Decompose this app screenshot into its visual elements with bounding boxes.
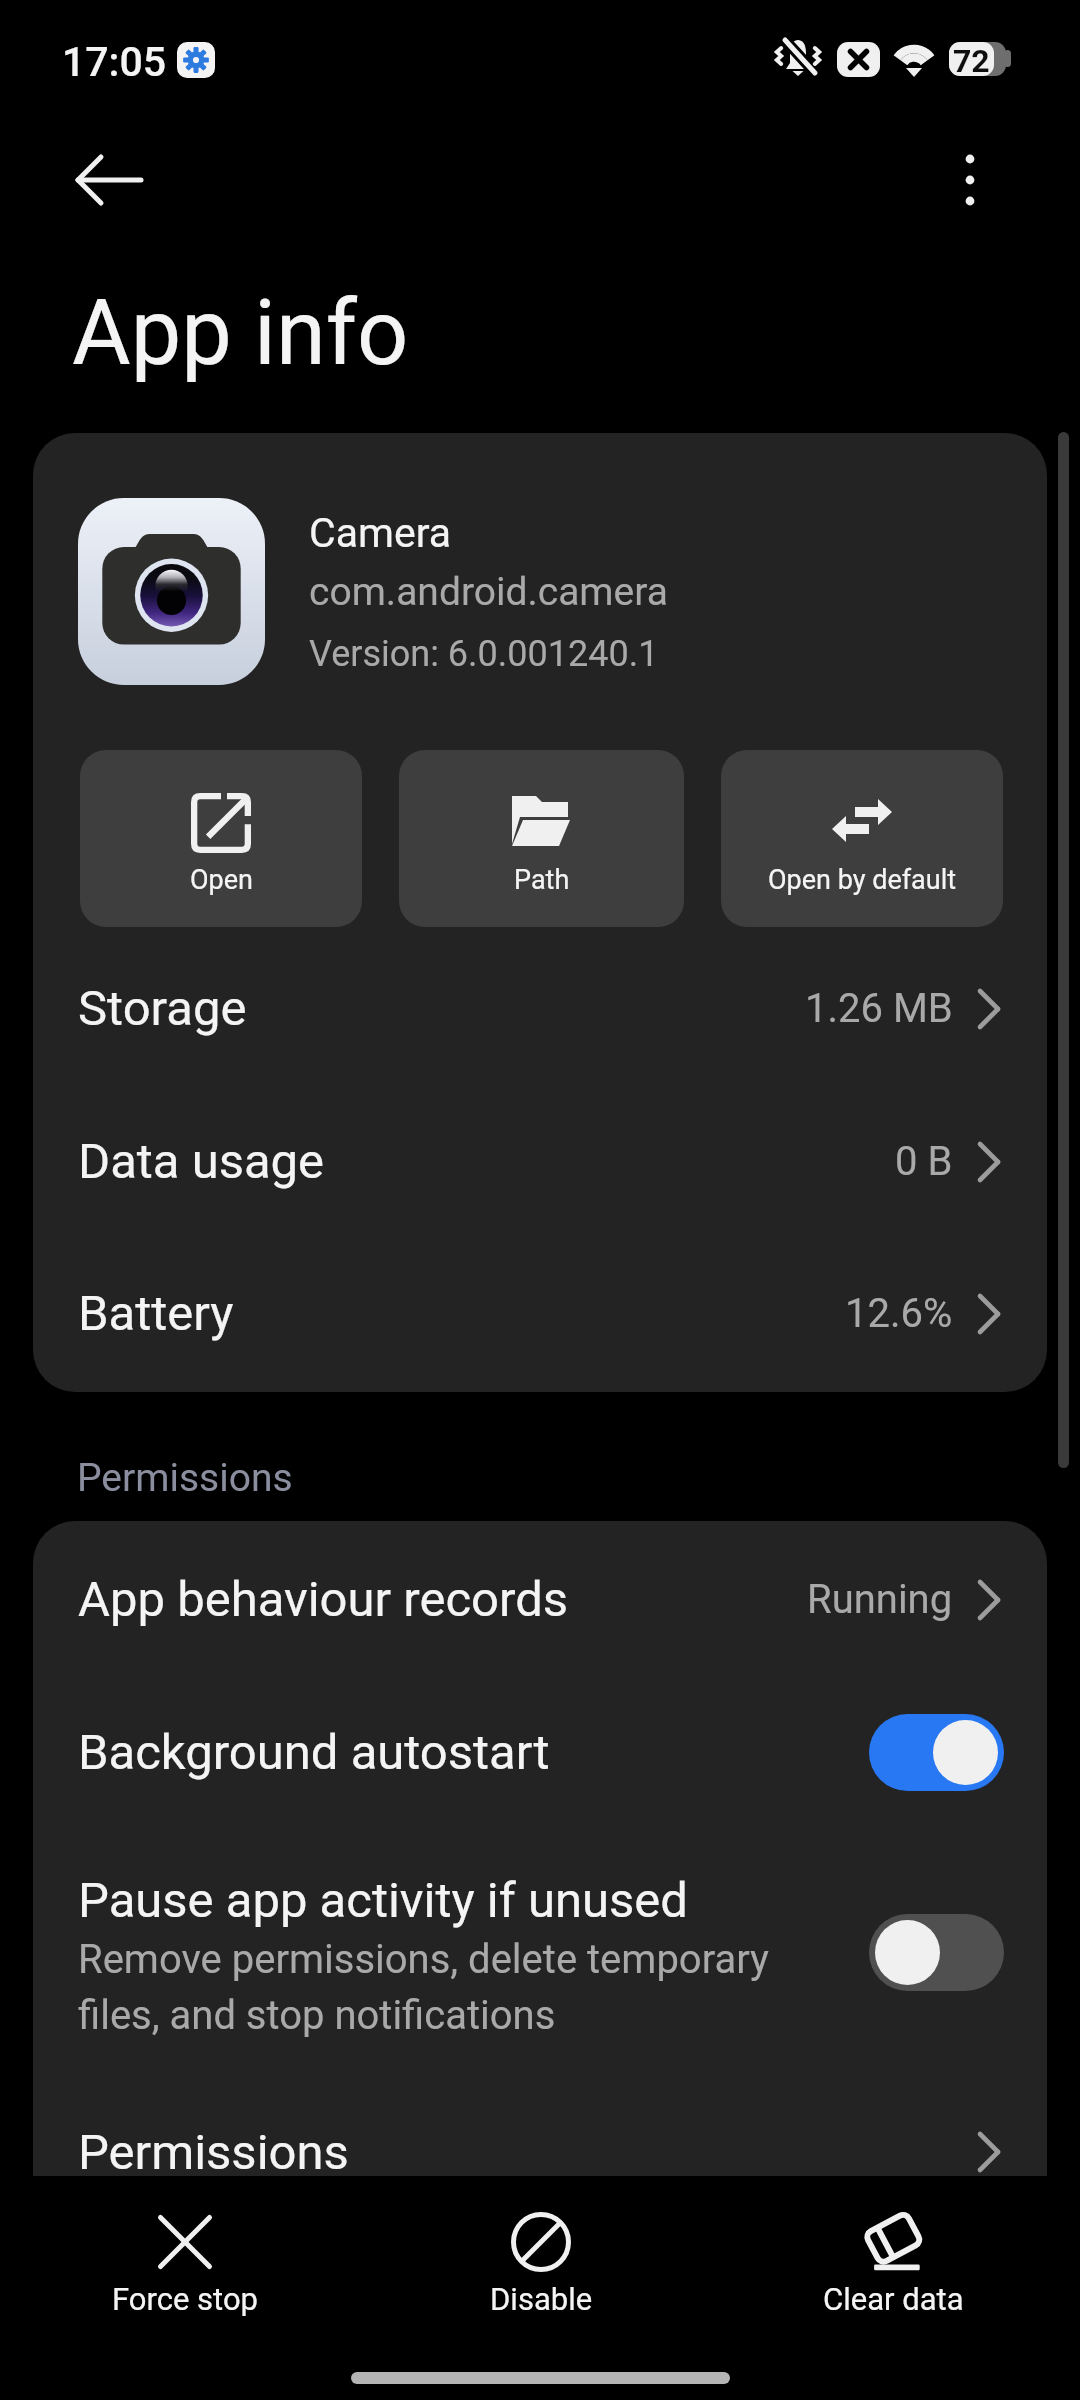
button[interactable]: Off	[869, 1914, 1004, 1991]
staticText: Camera	[309, 509, 452, 557]
button[interactable]: Back	[49, 120, 169, 240]
staticText: Open by default	[768, 864, 957, 896]
button[interactable]: Pause app activity if unused	[33, 1860, 1047, 2070]
button[interactable]: Force stop	[15, 2176, 355, 2400]
staticText: Path	[514, 864, 570, 896]
staticText: 72	[953, 42, 990, 76]
staticText: 1.26 MB	[805, 985, 953, 1032]
button[interactable]: Clear data	[723, 2176, 1063, 2400]
staticText: Open	[190, 864, 253, 896]
staticText: Remove permissions, delete temporary fil…	[78, 1936, 770, 2038]
staticText: Storage	[78, 980, 247, 1037]
staticText: Version: 6.0.001240.1	[309, 633, 659, 675]
staticText: Permissions	[77, 1455, 293, 1501]
button[interactable]: Open	[80, 750, 362, 927]
staticText: 0 B	[895, 1138, 953, 1185]
staticText: 12.6%	[845, 1290, 953, 1337]
button[interactable]: More options	[910, 120, 1030, 240]
staticText: Running	[807, 1576, 953, 1623]
staticText: Clear data	[823, 2281, 964, 2317]
staticText: Background autostart	[78, 1724, 550, 1781]
staticText: Data usage	[78, 1133, 325, 1190]
button[interactable]: App behaviour records	[33, 1523, 1047, 1675]
staticText: App behaviour records	[78, 1571, 569, 1628]
staticText: Force stop	[112, 2281, 258, 2317]
staticText: 17:05	[62, 38, 167, 86]
staticText: Pause app activity if unused	[78, 1872, 688, 1929]
button[interactable]: Background autostart	[33, 1676, 1047, 1828]
staticText: App info	[72, 281, 409, 386]
button[interactable]: Path	[399, 750, 684, 927]
staticText: Battery	[78, 1285, 234, 1342]
button[interactable]: Permissions	[33, 2076, 1047, 2176]
button[interactable]: Disable	[371, 2176, 711, 2400]
button[interactable]: Storage	[33, 932, 1047, 1084]
button[interactable]: On	[869, 1714, 1004, 1791]
staticText: Permissions	[78, 2124, 349, 2176]
staticText: Disable	[490, 2281, 593, 2317]
button[interactable]: Data usage	[33, 1085, 1047, 1237]
button[interactable]: Battery	[33, 1237, 1047, 1389]
button[interactable]: Open by default	[721, 750, 1003, 927]
staticText: com.android.camera	[309, 569, 668, 615]
